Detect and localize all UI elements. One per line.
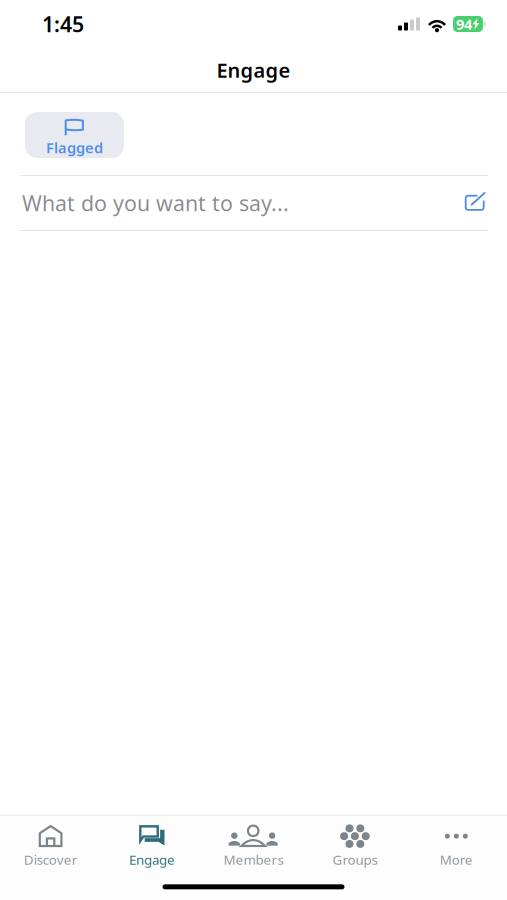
button[interactable]: Members [203,816,304,876]
button[interactable]: Engage [101,816,203,876]
button[interactable]: Flagged [25,112,124,158]
button[interactable]: Groups [304,816,406,876]
staticText: Flagged [46,138,103,157]
staticText: Members [223,851,283,868]
staticText: What do you want to say... [22,189,289,217]
button[interactable]: Discover [0,816,101,876]
button[interactable]: More [406,816,507,876]
staticText: Discover [24,851,78,868]
staticText: Engage [129,851,175,868]
staticText: Groups [332,851,377,868]
button[interactable]: What do you want to say... [0,176,453,230]
staticText: 94 [456,14,472,34]
button[interactable]: New post [453,176,497,230]
staticText: More [440,851,473,868]
staticText: Engage [216,57,290,83]
staticText: 1:45 [42,10,84,38]
